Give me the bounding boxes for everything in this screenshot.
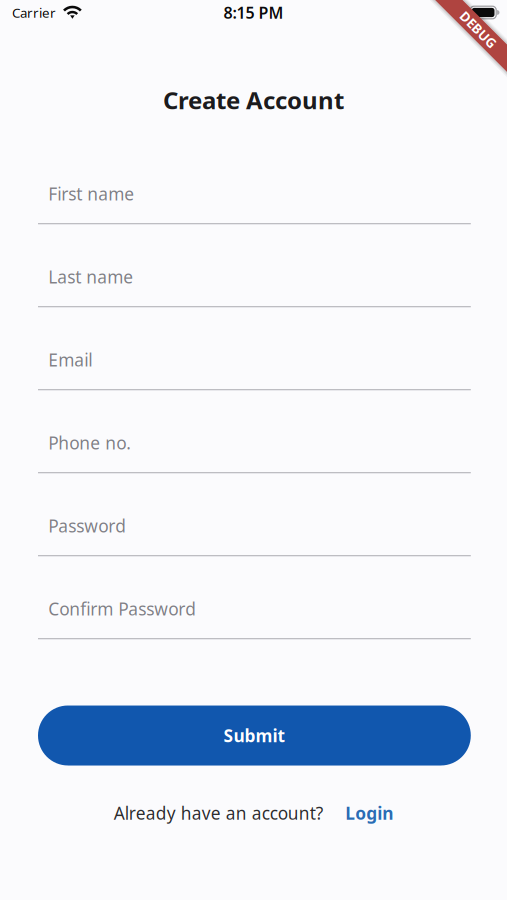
- staticText: Phone no.: [48, 431, 131, 454]
- staticText: Already have an account?: [114, 801, 324, 824]
- button[interactable]: First name: [38, 176, 471, 224]
- staticText: 8:15 PM: [223, 2, 283, 23]
- staticText: Confirm Password: [48, 597, 196, 620]
- button[interactable]: Email: [38, 342, 471, 390]
- staticText: Create Account: [163, 84, 344, 116]
- staticText: Carrier: [12, 4, 56, 21]
- staticText: Login: [345, 801, 393, 824]
- button[interactable]: Submit: [38, 705, 471, 765]
- staticText: Submit: [223, 724, 285, 747]
- staticText: Email: [48, 348, 92, 371]
- button[interactable]: Password: [38, 508, 471, 556]
- button[interactable]: Confirm Password: [38, 591, 471, 639]
- staticText: Last name: [48, 265, 133, 288]
- staticText: First name: [48, 182, 134, 205]
- staticText: DEBUG: [455, 21, 501, 38]
- button[interactable]: Login: [345, 801, 393, 824]
- button[interactable]: Last name: [38, 259, 471, 307]
- staticText: Password: [48, 514, 126, 537]
- button[interactable]: Phone no.: [38, 425, 471, 473]
